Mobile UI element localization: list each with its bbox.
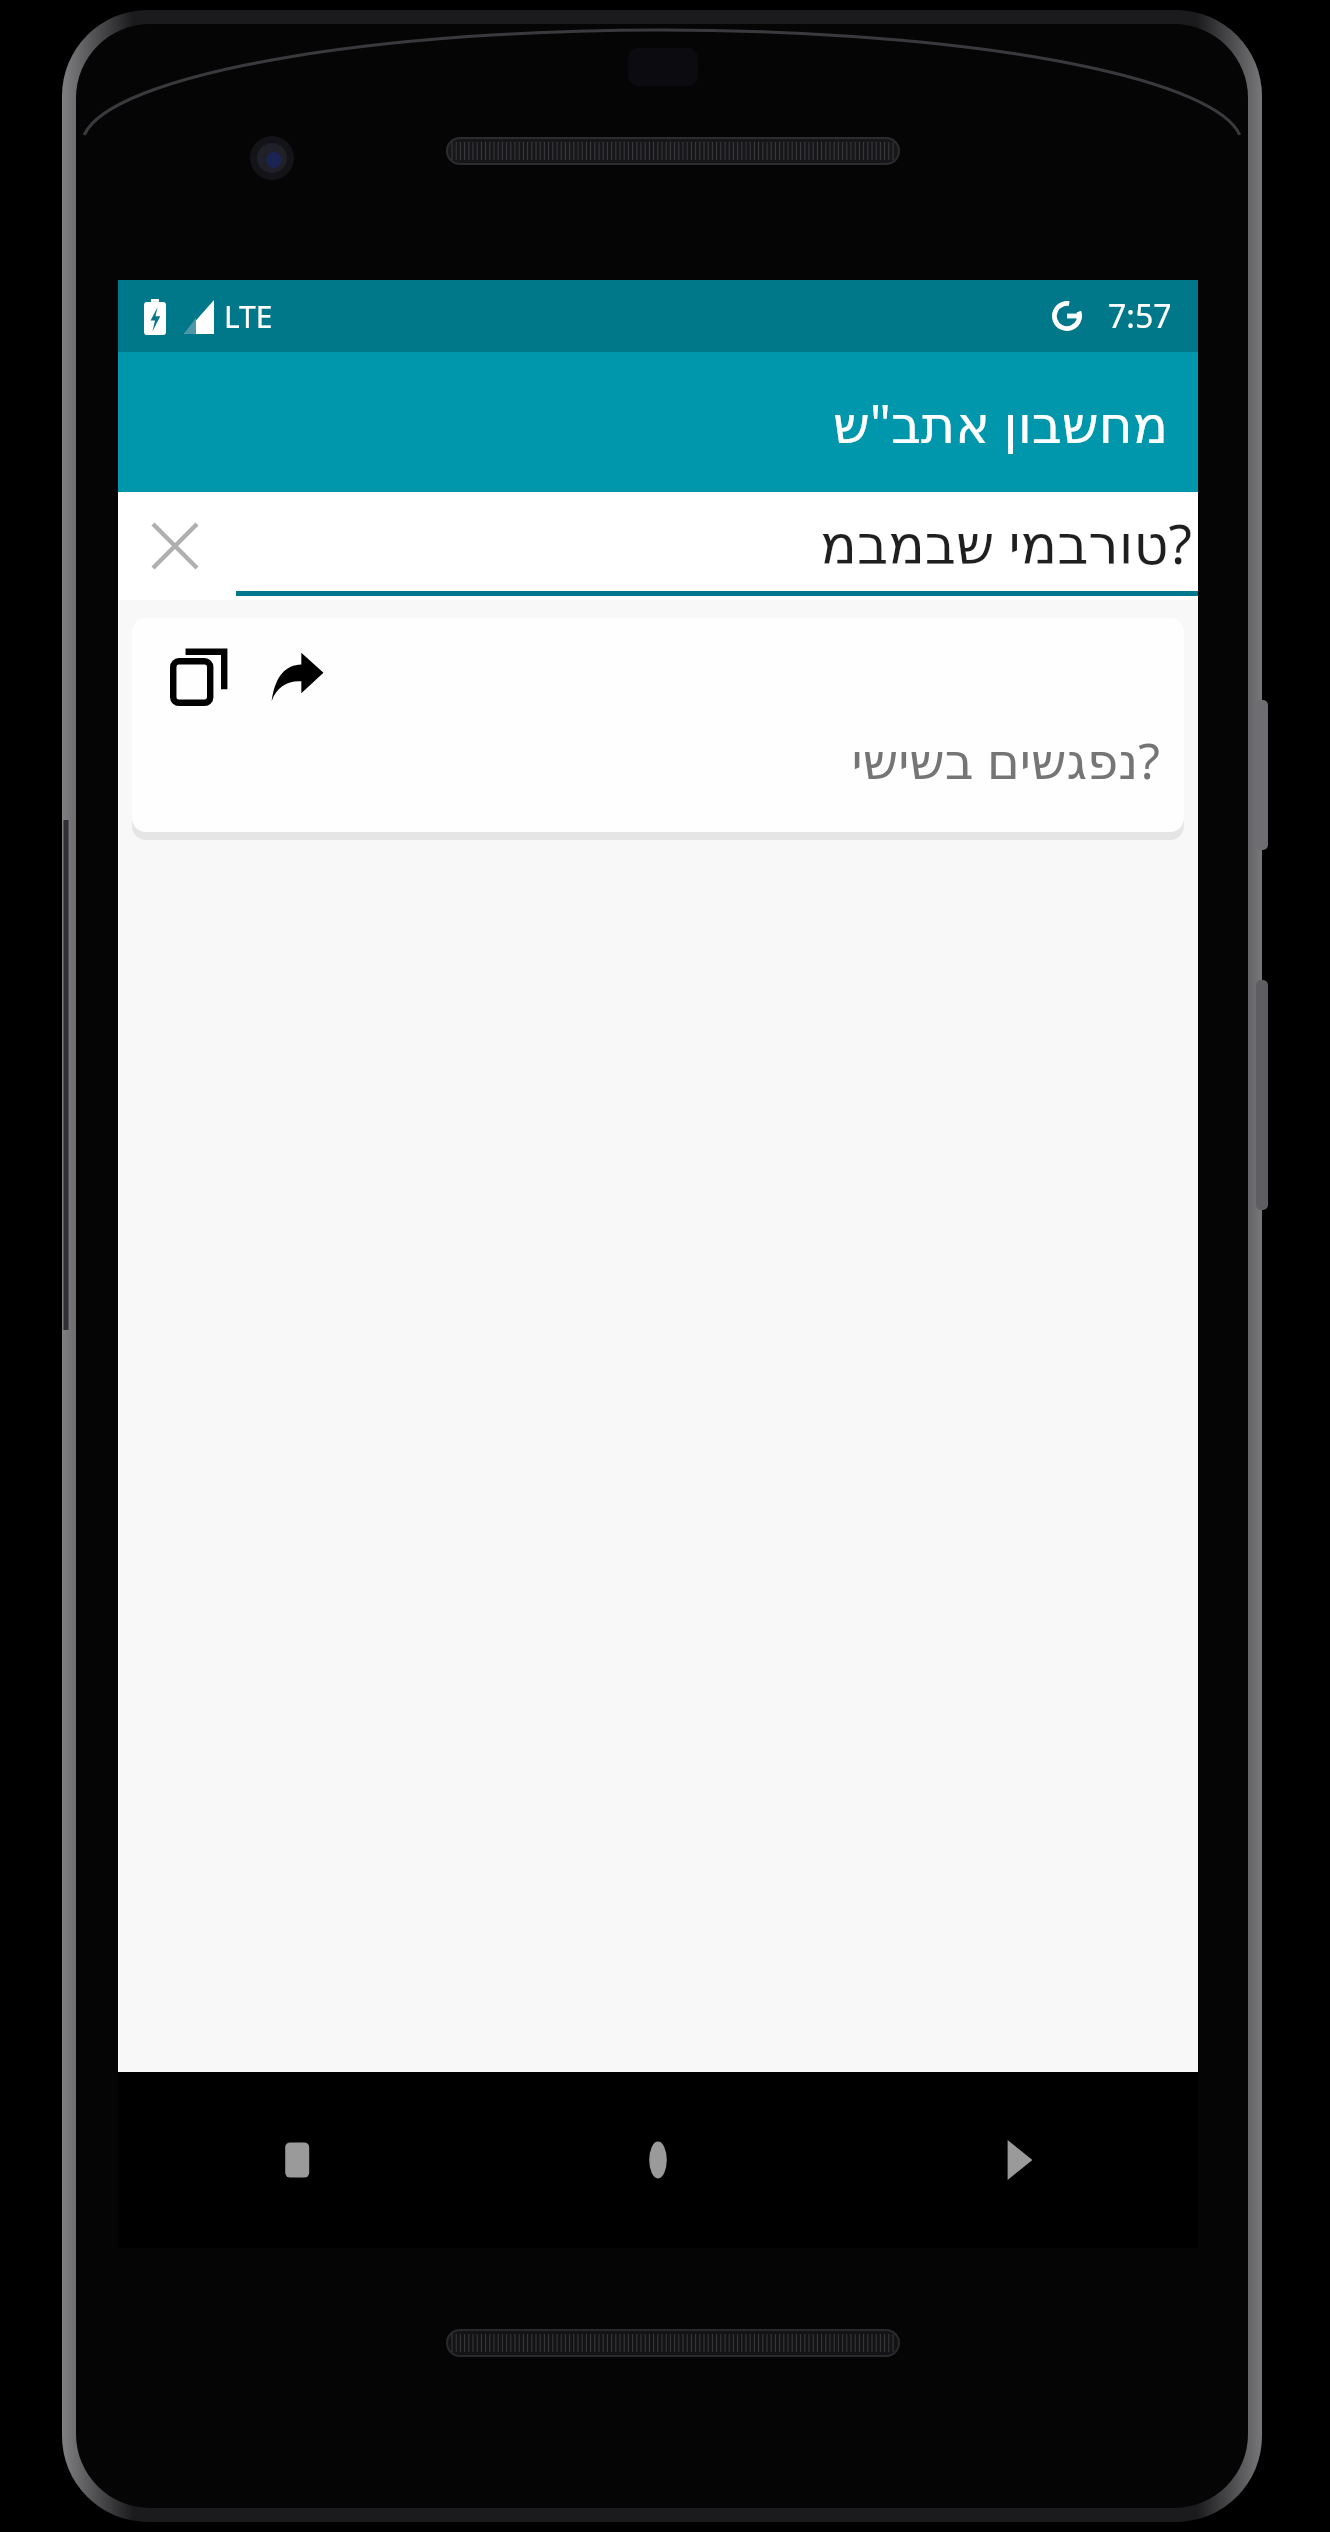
button[interactable]: Copy [152, 630, 246, 724]
button[interactable]: Copy [132, 618, 1184, 832]
staticText: 7:57 [1108, 294, 1172, 338]
button[interactable]: Recents [838, 2072, 1198, 2248]
button[interactable]: Home [478, 2072, 838, 2248]
staticText: נפגשים בשישי? [132, 726, 1160, 794]
staticText: טורבמי שבמבמ? [820, 506, 1192, 580]
staticText: מחשבון אתב"ש [832, 387, 1168, 458]
button[interactable]: Back [118, 2072, 478, 2248]
button[interactable]: Clear [132, 503, 218, 589]
button[interactable]: Share [250, 630, 344, 724]
staticText: LTE [224, 296, 273, 337]
